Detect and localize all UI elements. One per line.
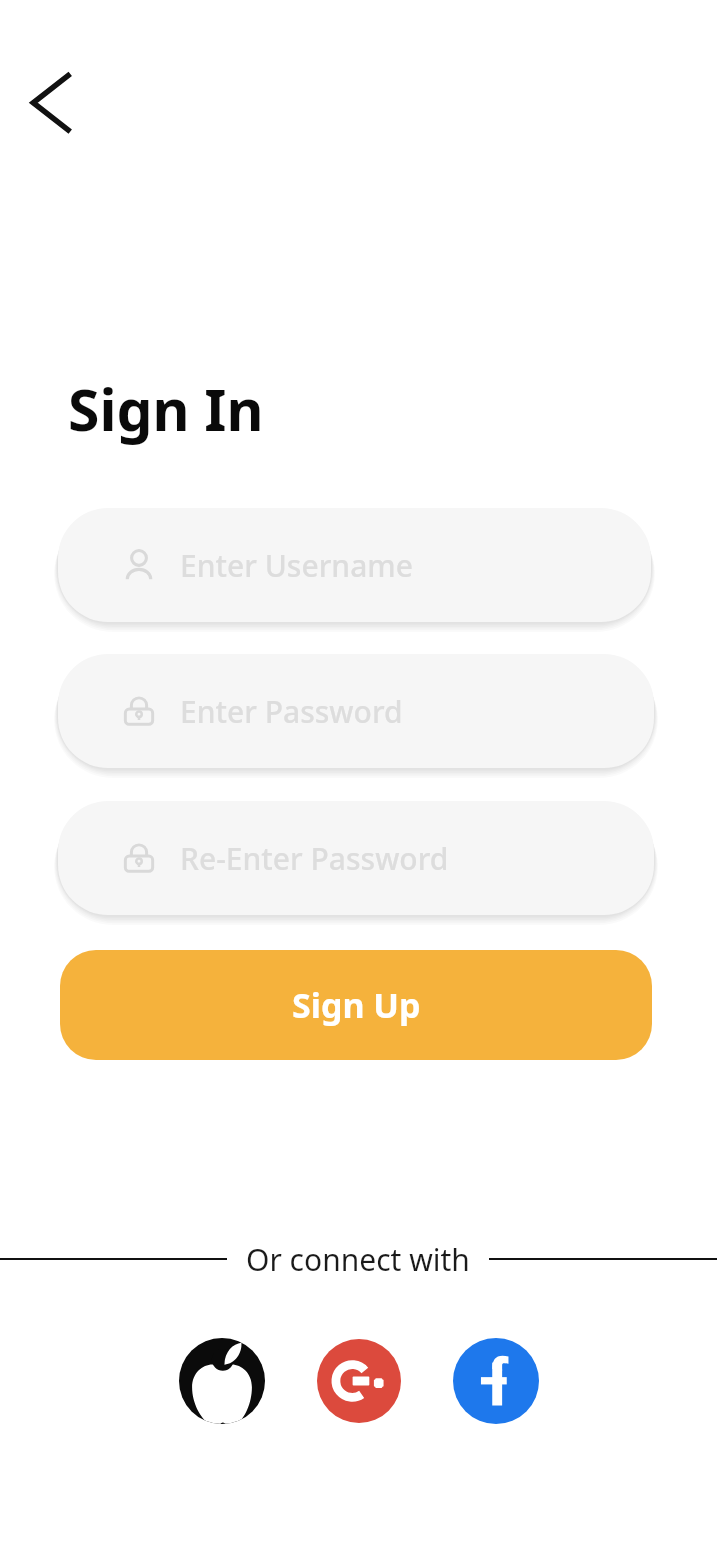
staticText: Sign Up <box>292 982 421 1028</box>
button[interactable]: Sign in with Google Plus <box>317 1339 401 1423</box>
staticText: Enter Username <box>180 545 413 586</box>
button[interactable]: Re-Enter Password <box>58 801 654 915</box>
button[interactable]: Sign Up <box>60 950 652 1060</box>
button[interactable]: Sign in with Facebook <box>453 1338 539 1424</box>
button[interactable]: Enter Username <box>58 508 651 622</box>
button[interactable]: Back <box>14 58 88 132</box>
staticText: Enter Password <box>180 691 403 732</box>
staticText: Or connect with <box>246 1239 470 1280</box>
button[interactable]: Enter Password <box>58 654 654 768</box>
staticText: Re-Enter Password <box>180 838 449 879</box>
button[interactable]: Sign in with Apple <box>179 1338 265 1424</box>
staticText: Sign In <box>68 370 264 448</box>
